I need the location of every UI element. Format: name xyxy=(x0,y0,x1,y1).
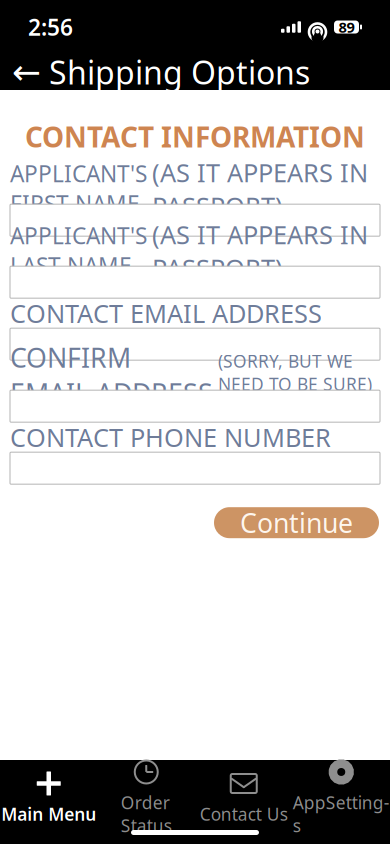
staticText: 2:56 xyxy=(28,12,73,42)
button[interactable]: Continue xyxy=(214,507,379,538)
button[interactable]: Order Status xyxy=(97,772,195,824)
button[interactable]: ← xyxy=(0,54,390,90)
staticText: Contact Us xyxy=(200,802,288,825)
staticText: CONTACT EMAIL ADDRESS xyxy=(10,296,322,330)
button[interactable] xyxy=(10,452,380,484)
button[interactable] xyxy=(10,328,380,360)
staticText: APPLICANT'S FIRST NAME xyxy=(10,158,147,218)
staticText: Shipping Options xyxy=(49,51,310,93)
staticText: CONTACT INFORMATION xyxy=(25,118,365,155)
button[interactable]: AppSettings xyxy=(292,772,390,824)
button[interactable]: Main Menu xyxy=(0,772,97,824)
staticText: Main Menu xyxy=(1,802,96,825)
button[interactable] xyxy=(10,390,380,422)
button[interactable]: Contact Us xyxy=(195,772,292,824)
staticText: (AS IT APPEARS IN PASSPORT) xyxy=(152,217,368,285)
staticText: APPLICANT'S LAST NAME xyxy=(10,220,147,280)
staticText: (SORRY, BUT WE NEED TO BE SURE) xyxy=(218,350,372,396)
staticText: CONFIRM EMAIL ADDRESS xyxy=(10,340,213,411)
staticText: CONTACT PHONE NUMBER xyxy=(10,420,331,454)
button[interactable] xyxy=(10,266,380,298)
staticText: Continue xyxy=(240,505,353,540)
staticText: (AS IT APPEARS IN PASSPORT) xyxy=(152,155,368,223)
button[interactable] xyxy=(10,204,380,236)
staticText: ← xyxy=(12,52,41,92)
staticText: Order Status xyxy=(121,791,172,837)
staticText: 89 xyxy=(338,17,354,37)
staticText: AppSettings xyxy=(293,791,390,837)
